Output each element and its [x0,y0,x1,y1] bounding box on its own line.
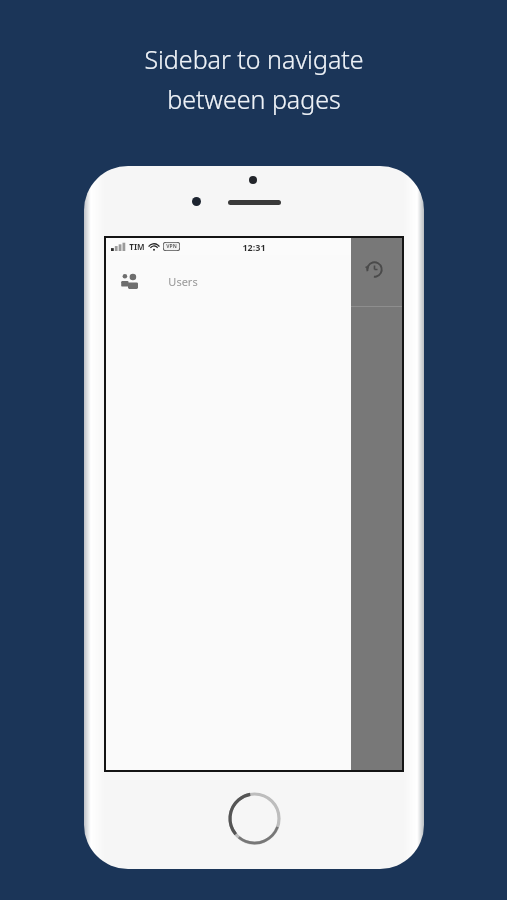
button[interactable]: Users [106,255,402,307]
button[interactable]: Home [228,792,281,845]
staticText: Users [168,274,198,289]
button[interactable]: History [365,260,384,279]
other: Users [120,271,140,291]
staticText: 12:31 [242,241,266,253]
staticText: between pages [167,82,341,116]
staticText: VPN [166,243,177,250]
staticText: Sidebar to navigate [144,42,364,76]
staticText: TIM [129,241,145,252]
